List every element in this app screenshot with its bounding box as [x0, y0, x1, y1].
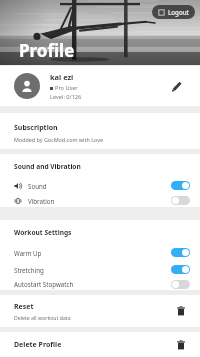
staticText: Stretching — [14, 266, 171, 274]
button[interactable]: Edit profile — [166, 76, 186, 96]
staticText: Reset — [14, 302, 34, 312]
button[interactable] — [171, 280, 190, 289]
button[interactable]: Sound — [0, 177, 200, 194]
staticText: Level: 0/126 — [50, 93, 82, 101]
staticText: Autostart Stopwatch — [14, 280, 171, 288]
staticText: Workout Settings — [14, 228, 72, 237]
button[interactable] — [171, 265, 190, 274]
staticText: Pro User — [55, 84, 78, 92]
staticText: Delete Profile — [14, 340, 176, 350]
button[interactable]: Stretching — [0, 261, 200, 278]
staticText: Subscription — [14, 123, 58, 133]
staticText: Sound and Vibration — [14, 162, 81, 171]
button[interactable] — [171, 196, 190, 205]
button[interactable]: Autostart Stopwatch — [0, 278, 200, 290]
staticText: Modded by GocMod.com with Love — [14, 136, 103, 143]
button[interactable]: Logout — [152, 5, 195, 19]
button[interactable]: kal ezi — [0, 66, 200, 106]
button[interactable]: Vibration — [0, 194, 200, 207]
button[interactable]: Delete Profile — [0, 332, 200, 357]
button[interactable]: Warm Up — [0, 244, 200, 261]
staticText: Warm Up — [14, 249, 171, 257]
button[interactable] — [171, 181, 190, 190]
button[interactable]: Reset — [0, 295, 200, 327]
staticText: Profile — [19, 39, 75, 62]
button[interactable]: Subscription — [0, 113, 200, 149]
staticText: Logout — [168, 8, 189, 16]
staticText: Vibration — [28, 197, 171, 205]
staticText: Delete all workout data — [14, 314, 71, 321]
staticText: Sound — [28, 182, 171, 190]
button[interactable] — [171, 248, 190, 257]
staticText: kal ezi — [50, 72, 74, 82]
